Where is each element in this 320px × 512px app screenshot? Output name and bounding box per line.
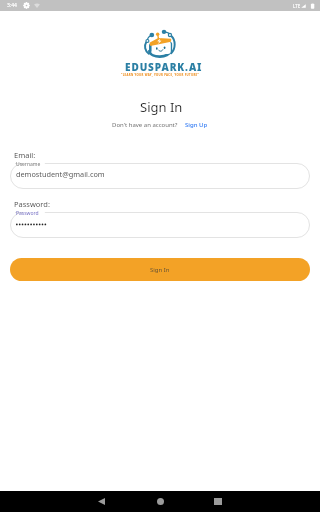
staticText: 3:44 bbox=[7, 2, 17, 9]
staticText: Sign In bbox=[140, 98, 183, 116]
button[interactable]: Back bbox=[85, 491, 117, 512]
button[interactable]: Recent apps bbox=[202, 491, 234, 512]
staticText: "LEARN YOUR WAY, YOUR PACE, YOUR FUTURE" bbox=[121, 73, 200, 77]
staticText: demostudent@gmail.com bbox=[16, 169, 105, 179]
staticText: EDUSPARK.AI bbox=[125, 60, 203, 74]
button[interactable]: Sign In bbox=[10, 258, 310, 281]
staticText: Password bbox=[16, 210, 39, 217]
button[interactable]: Sign Up bbox=[185, 121, 208, 129]
staticText: Don't have an account? bbox=[112, 121, 178, 129]
staticText: Sign Up bbox=[185, 121, 208, 129]
staticText: LTE bbox=[293, 3, 301, 9]
staticText: Sign In bbox=[150, 266, 170, 274]
button[interactable]: Home bbox=[144, 491, 176, 512]
staticText: Email: bbox=[14, 150, 36, 160]
staticText: Password: bbox=[14, 199, 50, 209]
staticText: Username bbox=[16, 161, 41, 168]
